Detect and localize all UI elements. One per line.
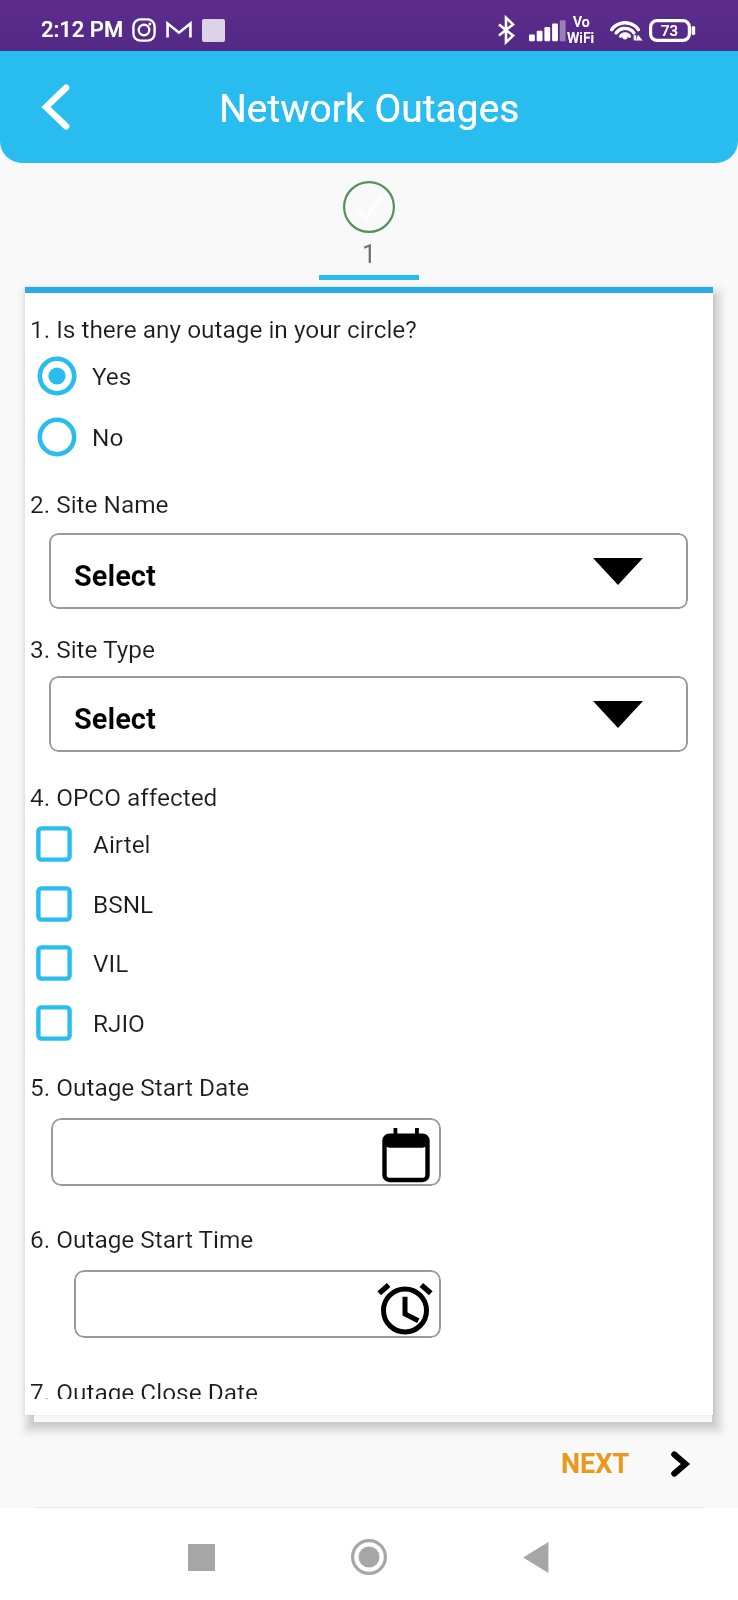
button[interactable]: Back <box>22 74 88 140</box>
staticText: 2. Site Name <box>30 490 169 519</box>
button[interactable]: BSNL <box>25 883 713 925</box>
staticText: 7. Outage Close Date <box>30 1378 258 1399</box>
staticText: 2:12 PM <box>41 17 124 43</box>
button[interactable]: Recents <box>168 1524 234 1590</box>
staticText: VIL <box>93 949 129 978</box>
button[interactable]: Home <box>336 1524 402 1590</box>
staticText: Vo <box>573 14 590 30</box>
button[interactable]: Choose <box>74 1270 441 1338</box>
staticText: No <box>92 423 124 452</box>
staticText: Network Outages <box>219 86 520 132</box>
staticText: Yes <box>92 362 132 391</box>
button[interactable]: Yes <box>25 354 713 398</box>
button[interactable]: No <box>25 415 713 459</box>
button[interactable]: Airtel <box>25 823 713 865</box>
button[interactable]: VIL <box>25 942 713 984</box>
staticText: 5. Outage Start Date <box>30 1073 250 1102</box>
staticText: WiFi <box>567 30 595 46</box>
staticText: NEXT <box>561 1448 630 1480</box>
staticText: 73 <box>661 22 679 40</box>
staticText: Select <box>74 702 156 736</box>
staticText: 1 <box>362 240 377 269</box>
staticText: Airtel <box>93 830 151 859</box>
staticText: 6. Outage Start Time <box>30 1225 254 1254</box>
button[interactable]: Select <box>49 533 688 609</box>
staticText: RJIO <box>93 1009 145 1038</box>
staticText: 4. OPCO affected <box>30 783 218 812</box>
button[interactable]: NEXT <box>549 1438 700 1490</box>
staticText: 3. Site Type <box>30 635 155 664</box>
button[interactable]: RJIO <box>25 1002 713 1044</box>
button[interactable]: Select <box>49 676 688 752</box>
staticText: 1. Is there any outage in your circle? <box>30 315 417 344</box>
button[interactable]: Back <box>502 1524 568 1590</box>
staticText: BSNL <box>93 890 154 919</box>
button[interactable]: Choose <box>51 1118 441 1186</box>
staticText: Select <box>74 559 156 593</box>
